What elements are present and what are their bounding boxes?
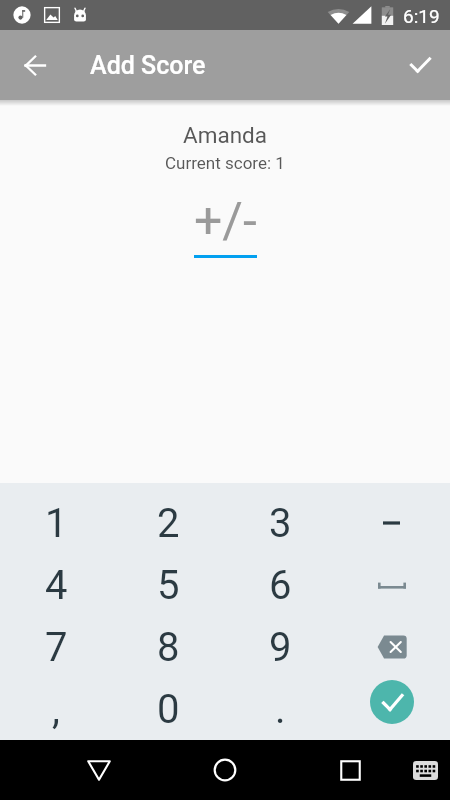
staticText: +/- — [194, 192, 257, 251]
button[interactable]: Minus — [337, 492, 450, 554]
staticText: 7 — [45, 624, 68, 671]
staticText: 1 — [45, 500, 68, 547]
staticText: 5 — [157, 562, 180, 609]
staticText: 0 — [157, 686, 180, 733]
staticText: Add Score — [90, 51, 206, 80]
button[interactable]: 2 — [112, 492, 224, 554]
button[interactable]: 0 — [112, 678, 224, 740]
button[interactable]: 8 — [112, 616, 224, 678]
staticText: 2 — [157, 500, 180, 547]
button[interactable]: Back — [69, 740, 129, 800]
staticText: . — [275, 686, 286, 733]
staticText: 4 — [45, 562, 68, 609]
button[interactable]: 5 — [112, 554, 224, 616]
staticText: 3 — [269, 500, 292, 547]
staticText: 8 — [157, 624, 180, 671]
button[interactable]: Back — [15, 45, 55, 85]
staticText: 6 — [269, 562, 292, 609]
button[interactable]: Space — [337, 554, 450, 616]
staticText: 6:19 — [403, 5, 440, 27]
button[interactable]: 6 — [224, 554, 337, 616]
staticText: Current score: 1 — [165, 153, 285, 173]
button[interactable] — [370, 680, 414, 724]
staticText: Amanda — [183, 122, 268, 148]
button[interactable]: Switch keyboard — [400, 745, 450, 795]
button[interactable]: , — [0, 678, 112, 740]
button[interactable]: 9 — [224, 616, 337, 678]
button[interactable]: . — [224, 678, 337, 740]
button[interactable]: 4 — [0, 554, 112, 616]
button[interactable]: Home — [195, 740, 255, 800]
button[interactable]: 3 — [224, 492, 337, 554]
staticText: 9 — [269, 624, 292, 671]
button[interactable]: Enter — [337, 678, 450, 740]
button[interactable]: Save — [399, 44, 441, 86]
staticText: , — [52, 686, 60, 733]
button[interactable]: 1 — [0, 492, 112, 554]
button[interactable]: 7 — [0, 616, 112, 678]
button[interactable]: Backspace — [337, 616, 450, 678]
button[interactable]: Recents — [320, 740, 380, 800]
